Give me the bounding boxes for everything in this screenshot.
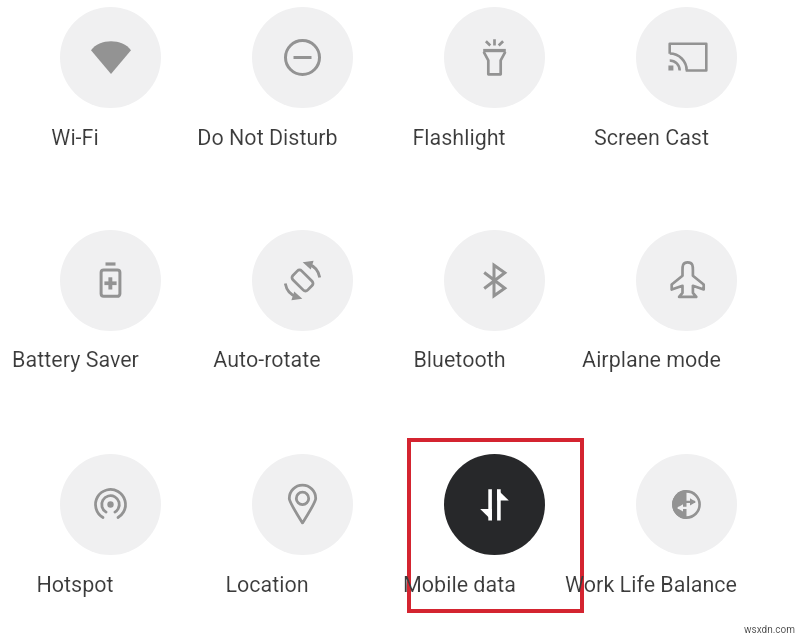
- button[interactable]: Flashlight: [399, 7, 589, 151]
- button[interactable]: Wi-Fi: [15, 7, 205, 151]
- staticText: Mobile data: [403, 572, 516, 597]
- button[interactable]: Screen Cast: [591, 7, 781, 151]
- button[interactable]: Do Not Disturb: [207, 7, 397, 151]
- staticText: Hotspot: [36, 572, 114, 597]
- button[interactable]: Work Life Balance: [591, 454, 781, 598]
- staticText: Screen Cast: [594, 125, 709, 150]
- staticText: Auto-rotate: [213, 347, 321, 372]
- button[interactable]: Hotspot: [15, 454, 205, 598]
- staticText: Flashlight: [412, 125, 506, 150]
- button[interactable]: Airplane mode: [591, 230, 781, 373]
- staticText: Battery Saver: [12, 347, 139, 372]
- staticText: wsxdn.com: [744, 624, 796, 636]
- staticText: Airplane mode: [582, 347, 721, 372]
- button[interactable]: Battery Saver: [15, 230, 205, 373]
- button[interactable]: Location: [207, 454, 397, 598]
- staticText: Wi-Fi: [51, 125, 99, 150]
- button[interactable]: Bluetooth: [399, 230, 589, 373]
- button[interactable]: Auto-rotate: [207, 230, 397, 373]
- staticText: Location: [225, 572, 309, 597]
- staticText: Bluetooth: [413, 347, 506, 372]
- staticText: Do Not Disturb: [197, 125, 338, 150]
- button[interactable]: Mobile data: [399, 454, 589, 598]
- staticText: Work Life Balance: [565, 572, 737, 597]
